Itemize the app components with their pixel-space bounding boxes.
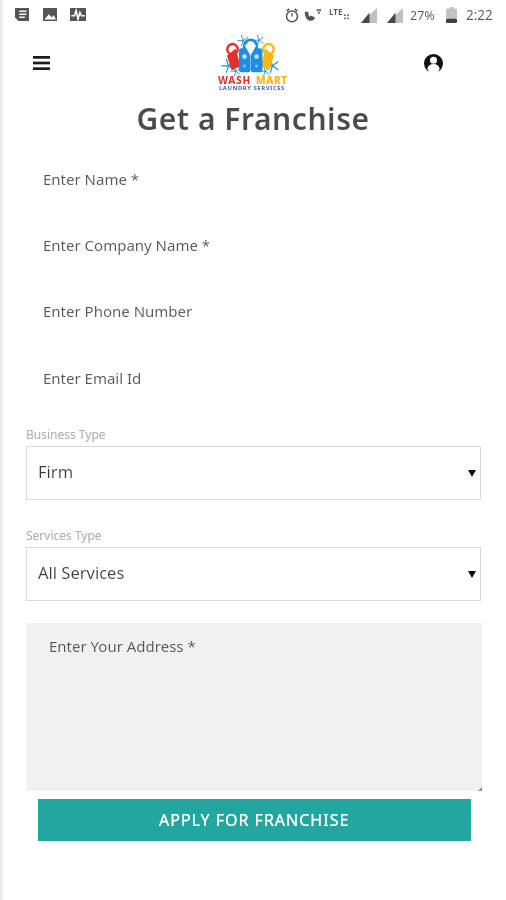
staticText: Get a Franchise xyxy=(0,98,506,139)
button[interactable]: All Services xyxy=(26,547,481,601)
button[interactable]: Enter Company Name * xyxy=(0,214,506,276)
button[interactable]: Account xyxy=(414,44,452,82)
staticText: Enter Company Name * xyxy=(43,235,211,255)
staticText: APPLY FOR FRANCHISE xyxy=(159,809,350,831)
staticText: WASH xyxy=(218,73,251,87)
staticText: Enter Email Id xyxy=(43,368,142,388)
staticText: Firm xyxy=(38,460,74,482)
staticText: LAUNDRY SERVICES xyxy=(219,84,285,92)
staticText: LTE xyxy=(329,6,343,17)
button[interactable]: Enter Phone Number xyxy=(0,280,506,342)
staticText: Enter Phone Number xyxy=(43,301,193,321)
button[interactable]: Enter Name * xyxy=(0,148,506,210)
button[interactable]: Enter Your Address * xyxy=(26,623,482,791)
staticText: Enter Name * xyxy=(43,169,140,189)
staticText: 2:22 xyxy=(466,6,493,24)
staticText: All Services xyxy=(38,561,125,583)
staticText: Enter Your Address * xyxy=(49,636,196,656)
staticText: Business Type xyxy=(26,426,106,442)
button[interactable]: Firm xyxy=(26,446,481,500)
staticText: Services Type xyxy=(26,527,102,543)
button[interactable]: APPLY FOR FRANCHISE xyxy=(38,799,471,841)
button[interactable]: Open navigation menu xyxy=(22,45,60,81)
staticText: 27% xyxy=(410,7,435,24)
staticText: MART xyxy=(256,73,288,87)
button[interactable]: Enter Email Id xyxy=(0,347,506,409)
